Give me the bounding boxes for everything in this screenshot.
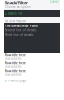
staticText: SECTION HEADER [5, 19, 26, 23]
staticText: Row title here [5, 69, 26, 73]
button[interactable]: Row title here [4, 53, 60, 61]
staticText: Snack/Filter [5, 0, 28, 5]
button[interactable]: Cancel [50, 0, 59, 3]
staticText: Cancel [50, 0, 59, 3]
staticText: Back to list [8, 12, 22, 15]
staticText: ‹ [5, 10, 7, 17]
button[interactable]: ‹ [4, 10, 60, 17]
staticText: second detail line [5, 9, 31, 12]
button[interactable]: ‹ [4, 77, 60, 84]
staticText: Second line of details [5, 28, 36, 32]
staticText: Row title here [5, 61, 26, 65]
staticText: row subtitle [5, 65, 22, 68]
staticText: row subtitle [5, 73, 22, 76]
staticText: ‹ [5, 77, 7, 84]
button[interactable]: Row title here [4, 61, 60, 69]
staticText: Previous page [8, 79, 27, 82]
staticText: Third line of details [5, 33, 33, 37]
button[interactable]: Row title here [4, 69, 60, 77]
staticText: THE TOWERS WEST PARK [5, 24, 38, 27]
staticText: Row title here [5, 53, 26, 57]
staticText: Choose an option [5, 5, 31, 9]
staticText: row subtitle [5, 57, 22, 60]
